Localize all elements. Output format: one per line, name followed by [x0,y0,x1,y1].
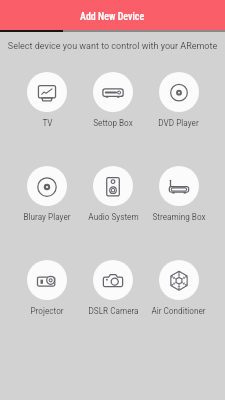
staticText: Audio System [88,212,139,222]
other: Air Conditioner [159,260,199,300]
button[interactable]: Add New Device [0,0,225,30]
other: Streaming Box [159,166,199,206]
staticText: Add New Device [80,11,145,23]
button[interactable]: Settop Box [80,72,146,128]
other: Audio System [93,166,133,206]
button[interactable]: Air Conditioner [146,260,211,316]
staticText: Projector [30,306,64,316]
other: Bluray Player [27,166,67,206]
other: DVD Player [159,72,199,112]
button[interactable]: TV [14,72,80,128]
button[interactable]: DSLR Camera [80,260,146,316]
staticText: DSLR Camera [88,306,139,316]
button[interactable]: Streaming Box [146,166,211,222]
other: TV [27,72,67,112]
staticText: Settop Box [93,118,133,128]
staticText: Bluray Player [23,212,71,222]
button[interactable]: Projector [14,260,80,316]
staticText: Select device you want to control with y… [0,41,225,52]
button[interactable]: Bluray Player [14,166,80,222]
staticText: TV [42,118,53,128]
staticText: DVD Player [158,118,199,128]
staticText: Streaming Box [152,212,206,222]
button[interactable]: Audio System [80,166,146,222]
other: Settop Box [93,72,133,112]
button[interactable]: DVD Player [146,72,211,128]
staticText: Air Conditioner [151,306,206,316]
other: DSLR Camera [93,260,133,300]
other: Projector [27,260,67,300]
